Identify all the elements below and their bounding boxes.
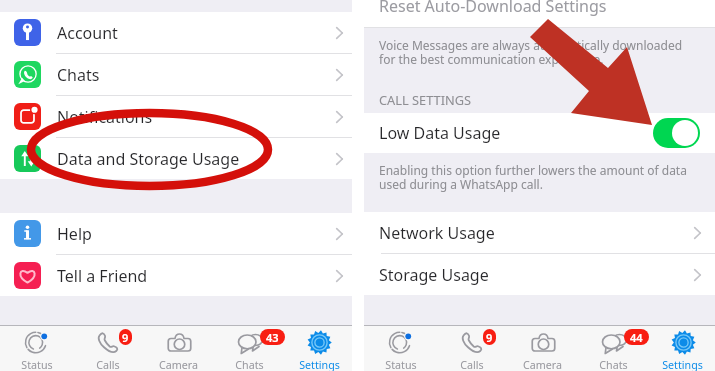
staticText: 9 [122,330,129,345]
button[interactable]: Reset Auto-Download Settings [364,0,715,27]
staticText: Low Data Usage [379,122,501,144]
staticText: Chats [57,64,100,86]
staticText: 43 [266,330,279,345]
staticText: Chats [235,358,264,371]
button[interactable]: 9 [436,326,507,371]
button[interactable]: Settings [285,326,352,371]
button[interactable]: Data and Storage Usage [0,138,352,179]
staticText: Notifications [57,106,153,128]
button[interactable]: Tell a Friend [0,255,352,296]
button[interactable]: Low Data Usage [364,113,715,153]
button[interactable]: 44 [578,326,649,371]
staticText: Camera [159,358,198,371]
staticText: Enabling this option further lowers the … [379,162,687,193]
staticText: CALL SETTINGS [379,91,472,108]
staticText: Chats [599,358,628,371]
staticText: 9 [486,330,493,345]
staticText: Data and Storage Usage [57,148,240,170]
button[interactable]: Help [0,213,352,254]
staticText: Settings [299,358,340,371]
button[interactable]: Status [365,326,436,371]
button[interactable]: Status [1,326,72,371]
button[interactable]: 9 [72,326,143,371]
staticText: Help [57,223,92,245]
staticText: Calls [96,358,120,371]
staticText: Account [57,22,118,44]
button[interactable]: Account [0,12,352,53]
staticText: Status [21,358,53,371]
button[interactable]: 43 [214,326,285,371]
staticText: Settings [662,358,703,371]
staticText: Calls [460,358,484,371]
button[interactable]: Settings [649,326,715,371]
staticText: Tell a Friend [57,265,148,287]
button[interactable]: Notifications [0,96,352,137]
staticText: Network Usage [379,222,495,244]
button[interactable]: Low Data Usage toggle, on [653,118,700,148]
staticText: Voice Messages are always automatically … [379,37,683,68]
staticText: 44 [630,330,643,345]
button[interactable]: Camera [507,326,578,371]
staticText: Camera [523,358,562,371]
button[interactable]: Network Usage [364,212,715,253]
staticText: Status [385,358,417,371]
staticText: Storage Usage [379,264,489,286]
button[interactable]: Chats [0,54,352,95]
staticText: Reset Auto-Download Settings [379,0,607,17]
button[interactable]: Storage Usage [364,254,715,295]
button[interactable]: Camera [143,326,214,371]
